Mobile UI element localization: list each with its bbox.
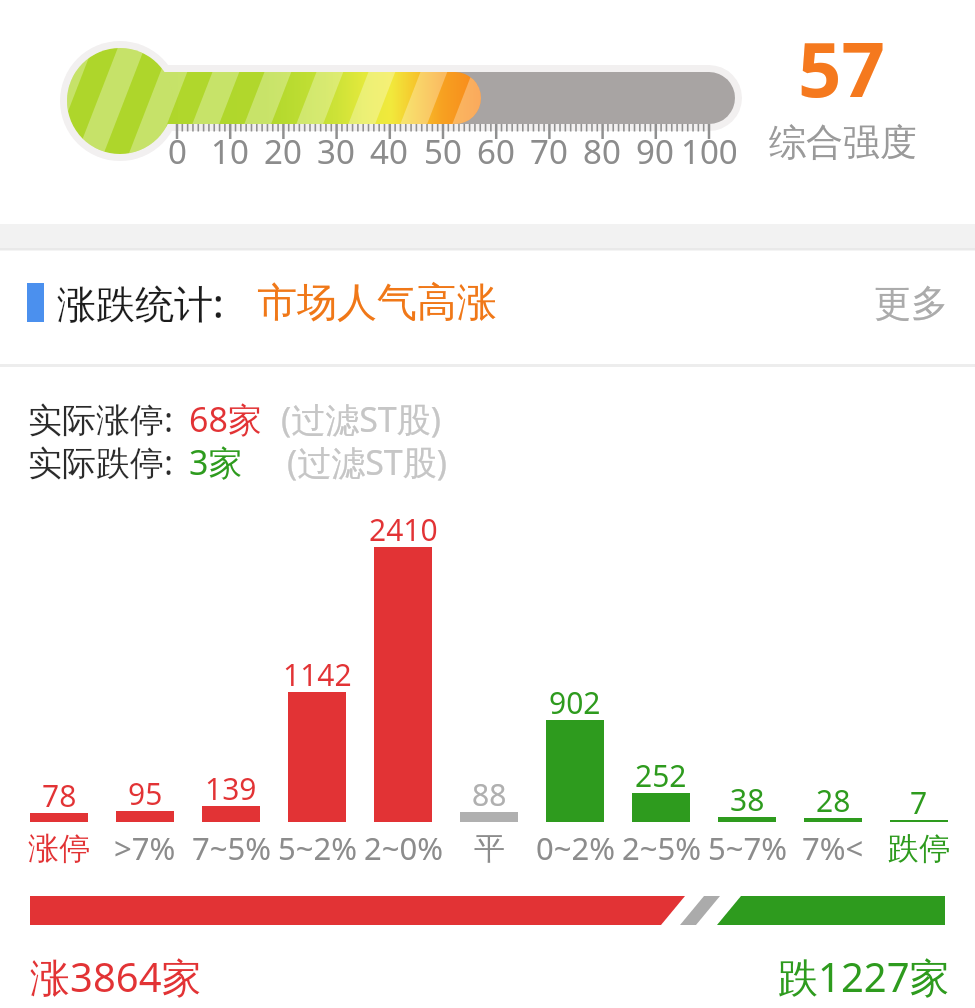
staticText: 60 [477, 129, 515, 174]
staticText: 跌1227家 [778, 949, 950, 1004]
staticText: (过滤ST股) [287, 439, 447, 485]
staticText: 57 [798, 16, 885, 120]
staticText: 5~7% [708, 827, 787, 869]
staticText: 市场人气高涨 [257, 277, 497, 327]
staticText: 90 [636, 129, 674, 174]
staticText: 88 [472, 774, 507, 815]
staticText: 78 [42, 775, 77, 816]
staticText: 28 [816, 780, 851, 821]
staticText: (过滤ST股) [281, 396, 441, 442]
staticText: 68家 [189, 396, 262, 442]
staticText: 2~0% [364, 827, 443, 869]
staticText: 38 [730, 779, 765, 820]
staticText: 综合强度 [769, 119, 917, 166]
button[interactable]: 更多 [848, 266, 948, 340]
staticText: 2~5% [622, 827, 701, 869]
staticText: 更多 [874, 280, 948, 327]
staticText: 7%< [802, 827, 864, 869]
staticText: 139 [205, 768, 257, 809]
staticText: 20 [264, 129, 302, 174]
staticText: 7~5% [192, 827, 271, 869]
staticText: 902 [549, 682, 601, 723]
staticText: 0 [168, 129, 187, 174]
staticText: 252 [635, 755, 687, 796]
staticText: 10 [211, 129, 249, 174]
staticText: 实际涨停: [28, 396, 174, 442]
staticText: >7% [114, 827, 176, 869]
staticText: 100 [681, 129, 738, 174]
staticText: 70 [530, 129, 568, 174]
staticText: 0~2% [536, 827, 615, 869]
staticText: 涨停 [28, 829, 90, 868]
staticText: 95 [128, 773, 163, 814]
staticText: 80 [583, 129, 621, 174]
staticText: 50 [424, 129, 462, 174]
staticText: 5~2% [278, 827, 357, 869]
staticText: 7 [910, 782, 928, 823]
staticText: 涨3864家 [30, 949, 202, 1004]
staticText: 1142 [283, 654, 352, 695]
staticText: 3家 [189, 439, 243, 485]
staticText: 跌停 [888, 829, 950, 868]
staticText: 实际跌停: [28, 439, 174, 485]
staticText: 30 [317, 129, 355, 174]
staticText: 2410 [369, 509, 438, 550]
staticText: 平 [474, 829, 505, 868]
staticText: 40 [370, 129, 408, 174]
staticText: 涨跌统计: [57, 276, 224, 329]
